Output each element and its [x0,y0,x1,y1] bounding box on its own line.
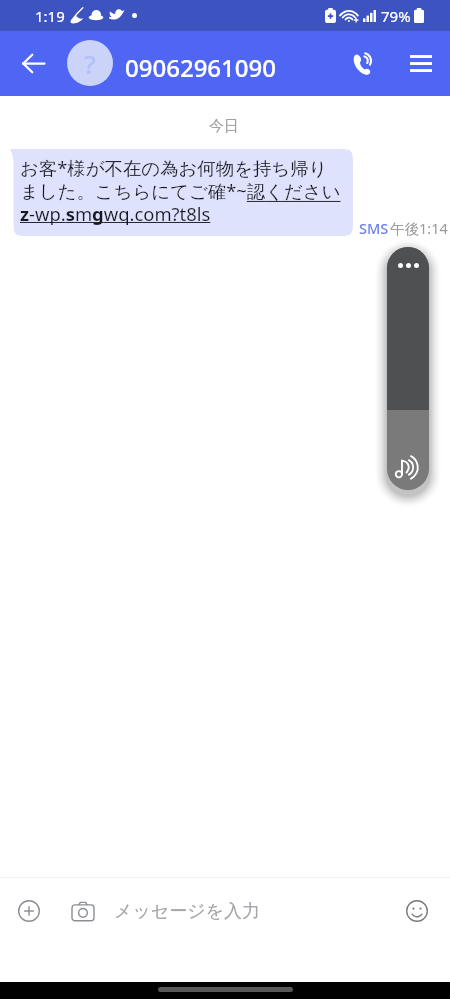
button[interactable]: Add attachment [11,893,47,929]
staticText: メッセージを入力 [114,900,261,923]
button[interactable]: Camera [65,893,101,929]
staticText: SMS [359,218,389,238]
staticText: お客*様が不在の為お何物を持ち帰り ました。こちらにてご確*~認ください z-w… [20,155,341,226]
button[interactable]: お客*様が不在の為お何物を持ち帰り ました。こちらにてご確*~認ください z-w… [10,149,353,236]
staticText: 午後1:14 [390,218,448,238]
staticText: 今日 [209,117,239,136]
button[interactable]: Volume [387,247,429,490]
staticText: ? [84,46,96,81]
staticText: 1:19 [35,6,65,26]
staticText: 79% [381,6,411,26]
staticText: 09062961090 [125,51,277,84]
button[interactable]: Call [340,40,386,86]
button[interactable]: Emoji [399,893,435,929]
button[interactable]: Back [10,40,56,86]
button[interactable]: Menu [398,40,444,86]
